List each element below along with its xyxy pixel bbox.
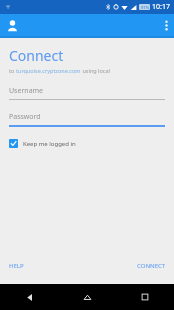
button[interactable]: HELP xyxy=(0,258,33,274)
staticText: turquoise.cryptzone.com xyxy=(16,67,81,74)
staticText: using local xyxy=(81,67,110,74)
button[interactable]: Home xyxy=(58,284,116,310)
staticText: 10:17 xyxy=(152,2,170,12)
button[interactable]: CONNECT xyxy=(129,258,174,274)
button[interactable]: Account xyxy=(0,17,25,34)
button[interactable]: Keep me logged in xyxy=(7,136,78,151)
staticText: Connect xyxy=(9,46,64,65)
button[interactable]: Password xyxy=(9,112,165,127)
staticText: CONNECT xyxy=(137,262,166,270)
button[interactable]: More options xyxy=(159,17,174,34)
button[interactable]: Username xyxy=(9,86,165,100)
staticText: to xyxy=(9,67,16,74)
staticText: Username xyxy=(9,86,44,96)
button[interactable]: Recent apps xyxy=(116,284,174,310)
staticText: Keep me logged in xyxy=(23,140,76,148)
staticText: 97% xyxy=(141,5,149,10)
staticText: Password xyxy=(9,112,41,122)
button[interactable]: Back xyxy=(0,284,58,310)
staticText: HELP xyxy=(9,262,24,270)
